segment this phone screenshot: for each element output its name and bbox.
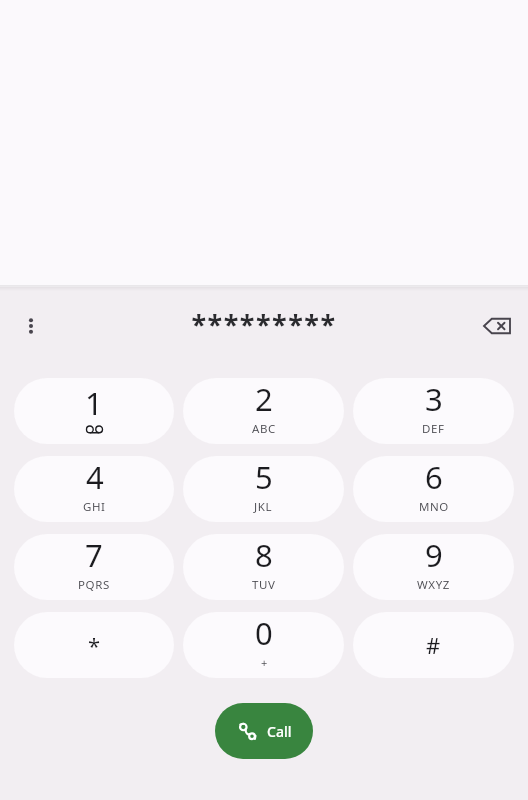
button[interactable]: 8 bbox=[183, 534, 344, 600]
button[interactable]: More options bbox=[7, 302, 55, 350]
button[interactable]: 9 bbox=[353, 534, 514, 600]
staticText: 4 bbox=[86, 456, 104, 498]
staticText: PQRS bbox=[78, 577, 110, 593]
staticText: MNO bbox=[419, 499, 449, 515]
staticText: TUV bbox=[252, 577, 276, 593]
staticText: * bbox=[88, 630, 101, 660]
button[interactable]: Call bbox=[215, 703, 313, 759]
button[interactable]: 3 bbox=[353, 378, 514, 444]
staticText: 2 bbox=[255, 378, 273, 420]
button[interactable]: # bbox=[353, 612, 514, 678]
staticText: JKL bbox=[254, 499, 273, 515]
staticText: DEF bbox=[422, 421, 445, 437]
staticText: WXYZ bbox=[417, 577, 450, 593]
staticText: 7 bbox=[85, 534, 103, 576]
button[interactable]: * bbox=[14, 612, 174, 678]
staticText: 6 bbox=[425, 456, 443, 498]
button[interactable]: Backspace bbox=[473, 302, 521, 350]
staticText: 5 bbox=[255, 456, 273, 498]
button[interactable]: 0 bbox=[183, 612, 344, 678]
staticText: ********* bbox=[191, 306, 337, 343]
staticText: 1 bbox=[85, 382, 103, 424]
staticText: # bbox=[426, 630, 441, 660]
staticText: 8 bbox=[255, 534, 273, 576]
staticText: GHI bbox=[83, 499, 106, 515]
button[interactable]: 2 bbox=[183, 378, 344, 444]
button[interactable]: 6 bbox=[353, 456, 514, 522]
staticText: 9 bbox=[425, 534, 443, 576]
staticText: 0 bbox=[255, 612, 273, 654]
button[interactable]: 1 bbox=[14, 378, 174, 444]
staticText: ABC bbox=[252, 421, 276, 437]
staticText: 3 bbox=[425, 378, 443, 420]
button[interactable]: 7 bbox=[14, 534, 174, 600]
button[interactable]: 5 bbox=[183, 456, 344, 522]
button[interactable]: 4 bbox=[14, 456, 174, 522]
staticText: + bbox=[261, 655, 268, 670]
staticText: Call bbox=[267, 722, 292, 741]
